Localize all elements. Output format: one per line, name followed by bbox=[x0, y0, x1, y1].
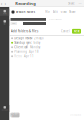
button[interactable]: Files bbox=[0, 19, 9, 26]
button[interactable]: Home bbox=[0, 9, 9, 16]
staticText: Home bbox=[3, 13, 7, 15]
staticText: Share bbox=[69, 10, 76, 14]
button[interactable]: Cancel bbox=[61, 29, 70, 33]
staticText: Record bbox=[10, 111, 19, 119]
staticText: Notes bbox=[12, 23, 16, 24]
staticText: Files bbox=[3, 23, 6, 25]
staticText: Cancel bbox=[61, 29, 70, 33]
button[interactable]: Share bbox=[69, 10, 76, 14]
button[interactable]: More options bbox=[78, 0, 82, 7]
staticText: Client call bbox=[14, 45, 28, 49]
button[interactable]: Planning bbox=[9, 49, 84, 54]
staticText: File bbox=[45, 10, 50, 14]
button[interactable]: Back bbox=[0, 0, 4, 7]
staticText: Recording bbox=[15, 1, 36, 6]
staticText: ··· bbox=[78, 1, 81, 6]
staticText: Monday bbox=[30, 45, 40, 49]
staticText: Next bbox=[73, 29, 79, 33]
button[interactable]: Account bbox=[0, 105, 9, 112]
staticText: Design review bbox=[14, 36, 32, 40]
button[interactable]: View bbox=[60, 10, 66, 14]
staticText: Apr 11 bbox=[24, 54, 34, 58]
staticText: Edit bbox=[53, 10, 58, 14]
button[interactable]: Forward bbox=[4, 0, 7, 7]
staticText: Transcript ready bbox=[49, 18, 62, 20]
button[interactable]: Share bbox=[68, 0, 75, 7]
button[interactable]: File bbox=[45, 10, 50, 14]
staticText: › bbox=[4, 0, 6, 7]
staticText: Today bbox=[33, 41, 40, 44]
staticText: Share bbox=[68, 2, 75, 5]
staticText: ‹ bbox=[1, 0, 3, 7]
staticText: Apr 18 bbox=[29, 50, 39, 53]
button[interactable]: Record bbox=[10, 113, 19, 117]
staticText: Retro bbox=[14, 54, 22, 58]
button[interactable]: Retro bbox=[9, 54, 84, 58]
staticText: 2m ago bbox=[34, 36, 44, 40]
staticText: Session Notes bbox=[16, 10, 35, 14]
staticText: Add Folders & Files bbox=[11, 29, 38, 33]
button[interactable]: Standup sync bbox=[9, 40, 84, 45]
staticText: Standup sync bbox=[14, 41, 31, 44]
button[interactable]: Edit bbox=[53, 10, 58, 14]
button[interactable]: Client call bbox=[9, 45, 84, 49]
staticText: Planning bbox=[14, 50, 27, 53]
staticText: View bbox=[60, 10, 66, 14]
button[interactable]: Design review bbox=[9, 36, 84, 40]
button[interactable]: Next bbox=[72, 29, 81, 34]
